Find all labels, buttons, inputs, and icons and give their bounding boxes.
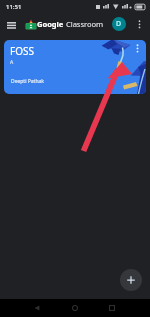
button[interactable]: Google Account bbox=[112, 17, 126, 31]
button[interactable]: Add class bbox=[120, 269, 142, 291]
staticText: Deepti Pathak bbox=[11, 78, 44, 85]
button[interactable]: Recent apps bbox=[103, 299, 121, 317]
button[interactable]: Home bbox=[66, 299, 84, 317]
staticText: Google bbox=[37, 19, 64, 29]
staticText: 11:51 bbox=[6, 3, 22, 11]
staticText: A bbox=[10, 59, 14, 66]
button[interactable]: Open navigation drawer bbox=[3, 17, 20, 34]
button[interactable]: FOSS bbox=[4, 40, 146, 94]
staticText: Classroom bbox=[66, 19, 104, 29]
button[interactable]: More options bbox=[131, 16, 147, 32]
staticText: D bbox=[116, 19, 122, 29]
button[interactable]: Back bbox=[28, 299, 46, 317]
button[interactable]: Class options bbox=[130, 41, 145, 56]
staticText: FOSS bbox=[10, 44, 34, 58]
